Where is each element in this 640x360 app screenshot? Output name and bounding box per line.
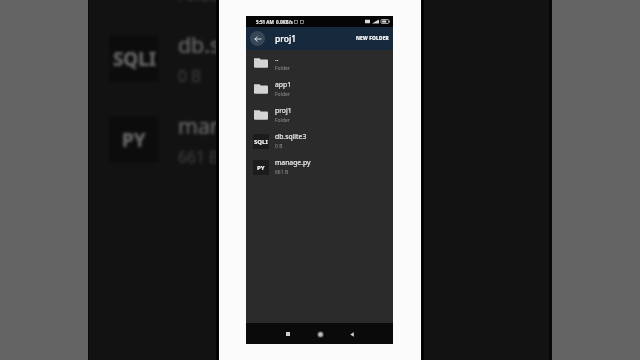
staticText: Folder (275, 65, 290, 72)
staticText: 5:51 AM (256, 19, 274, 25)
staticText: proj1 (275, 33, 297, 45)
button[interactable]: PY (246, 154, 393, 180)
button[interactable]: Back (344, 326, 360, 342)
staticText: Folder (178, 0, 225, 5)
button[interactable]: NEW FOLDER (354, 31, 390, 46)
button[interactable]: SQLI (89, 17, 549, 98)
staticText: Folder (275, 117, 290, 124)
button[interactable]: proj1 (89, 0, 549, 17)
staticText: 0 B (178, 65, 202, 86)
staticText: .. (275, 54, 279, 63)
staticText: 0.0KB/s (276, 19, 293, 25)
button[interactable]: .. (246, 50, 393, 76)
staticText: PY (257, 164, 265, 172)
staticText: 661 B (178, 146, 220, 167)
button[interactable]: SQLI (246, 128, 393, 154)
staticText: 661 B (275, 169, 289, 176)
button[interactable]: Home (312, 326, 328, 342)
staticText: NEW FOLDER (356, 35, 389, 42)
staticText: SQLI (113, 46, 156, 72)
staticText: db.sqlite3 (178, 30, 277, 59)
staticText: app1 (275, 80, 292, 89)
staticText: 0 B (275, 143, 283, 150)
button[interactable]: app1 (246, 76, 393, 102)
staticText: manage.py (275, 158, 311, 167)
staticText: Folder (275, 91, 290, 98)
staticText: db.sqlite3 (275, 132, 307, 141)
staticText: SQLI (254, 138, 268, 146)
staticText: proj1 (275, 106, 292, 115)
button[interactable]: Back (250, 31, 265, 46)
button[interactable]: Recents (280, 326, 296, 342)
staticText: manage.py (178, 111, 290, 140)
button[interactable]: PY (89, 98, 549, 179)
staticText: PY (122, 127, 146, 153)
button[interactable]: proj1 (246, 102, 393, 128)
